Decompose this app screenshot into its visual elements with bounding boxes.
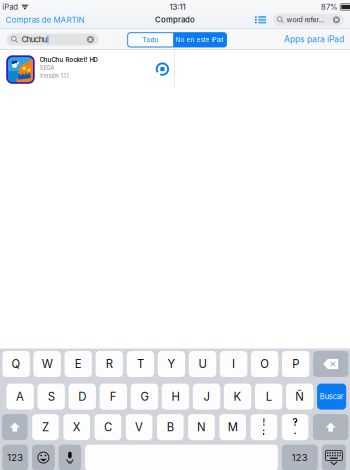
- staticText: Compras de MARTIN: [5, 15, 84, 25]
- staticText: S: [48, 390, 55, 403]
- staticText: 13:11: [169, 2, 185, 12]
- button[interactable]: T: [127, 351, 154, 377]
- staticText: ChuChu Rocket! HD: [39, 56, 97, 63]
- button[interactable]: Shift: [313, 414, 348, 440]
- staticText: R: [106, 357, 113, 371]
- staticText: C: [104, 420, 112, 434]
- button[interactable]: 123: [282, 445, 318, 470]
- button[interactable]: N: [188, 414, 215, 440]
- button[interactable]: F: [100, 384, 127, 410]
- button[interactable]: E: [64, 351, 92, 377]
- button[interactable]: U: [189, 351, 216, 377]
- staticText: T: [137, 357, 144, 371]
- staticText: Q: [12, 357, 21, 371]
- button[interactable]: Exclamation and semicolon: [251, 414, 277, 440]
- staticText: Buscar: [320, 392, 344, 401]
- staticText: Comprado: [155, 15, 195, 24]
- button[interactable]: word refer…: [273, 14, 344, 26]
- button[interactable]: ChuChu Rocket! HD: [0, 50, 174, 88]
- button[interactable]: K: [224, 384, 251, 410]
- button[interactable]: Buscar: [317, 384, 346, 410]
- staticText: I: [232, 357, 235, 371]
- button[interactable]: H: [162, 384, 189, 410]
- staticText: B: [167, 420, 174, 434]
- staticText: M: [228, 420, 238, 434]
- staticText: Chuchu: [22, 35, 47, 44]
- button[interactable]: Delete: [313, 351, 348, 377]
- staticText: D: [78, 390, 86, 403]
- button[interactable]: Hide keyboard: [322, 445, 346, 470]
- button[interactable]: V: [126, 414, 152, 440]
- button[interactable]: No en este iPad: [173, 33, 226, 47]
- staticText: E: [75, 357, 82, 371]
- button[interactable]: G: [131, 384, 158, 410]
- staticText: W: [42, 357, 53, 371]
- staticText: Z: [42, 420, 49, 434]
- button[interactable]: Compras de MARTIN: [5, 11, 89, 28]
- staticText: word refer…: [286, 16, 324, 24]
- button[interactable]: Shift: [2, 414, 28, 440]
- staticText: Ñ: [295, 390, 304, 403]
- button[interactable]: Todo: [128, 33, 173, 47]
- staticText: H: [171, 390, 179, 403]
- staticText: 123: [7, 452, 23, 463]
- staticText: No en este iPad: [176, 36, 224, 43]
- staticText: L: [266, 390, 272, 403]
- staticText: N: [197, 420, 206, 434]
- staticText: U: [198, 357, 206, 371]
- button[interactable]: B: [157, 414, 184, 440]
- staticText: Todo: [142, 36, 158, 44]
- button[interactable]: Z: [32, 414, 59, 440]
- button[interactable]: Apps para iPad: [280, 29, 344, 49]
- staticText: Apps para iPad: [284, 34, 344, 44]
- staticText: K: [234, 390, 242, 403]
- button[interactable]: R: [96, 351, 123, 377]
- button[interactable]: Y: [158, 351, 185, 377]
- staticText: X: [73, 420, 81, 434]
- button[interactable]: A: [6, 384, 34, 410]
- staticText: F: [110, 390, 117, 403]
- button[interactable]: P: [282, 351, 309, 377]
- button[interactable]: I: [220, 351, 247, 377]
- button[interactable]: List view: [251, 11, 270, 28]
- staticText: P: [292, 357, 299, 371]
- button[interactable]: D: [68, 384, 96, 410]
- staticText: Versión 1.1.1: [39, 73, 68, 79]
- button[interactable]: W: [33, 351, 61, 377]
- button[interactable]: X: [63, 414, 90, 440]
- staticText: 123: [292, 452, 308, 463]
- button[interactable]: J: [193, 384, 220, 410]
- staticText: O: [260, 357, 269, 371]
- staticText: A: [16, 390, 24, 403]
- button[interactable]: O: [251, 351, 278, 377]
- button[interactable]: Q: [2, 351, 30, 377]
- button[interactable]: M: [219, 414, 246, 440]
- button[interactable]: 123: [2, 445, 28, 470]
- button[interactable]: Ñ: [286, 384, 313, 410]
- button[interactable]: Dictation: [59, 445, 81, 470]
- button[interactable]: C: [95, 414, 121, 440]
- staticText: SEGA: [39, 65, 54, 71]
- staticText: Y: [167, 357, 175, 371]
- staticText: V: [135, 420, 143, 434]
- staticText: J: [203, 390, 209, 403]
- button[interactable]: Chuchu: [6, 33, 98, 45]
- staticText: 87%: [321, 2, 338, 12]
- staticText: iPad: [2, 2, 18, 12]
- button[interactable]: S: [37, 384, 65, 410]
- staticText: G: [140, 390, 148, 403]
- button[interactable]: L: [255, 384, 282, 410]
- button[interactable]: Emoji: [32, 445, 55, 470]
- button[interactable]: Question mark and period: [282, 414, 308, 440]
